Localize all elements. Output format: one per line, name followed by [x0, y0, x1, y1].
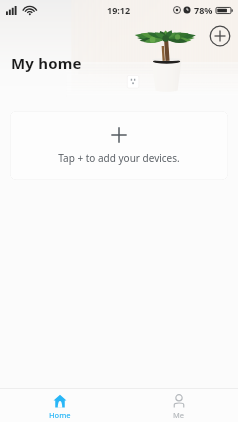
- staticText: 78%: [194, 4, 213, 16]
- button[interactable]: Add device: [208, 24, 232, 48]
- staticText: My home: [11, 53, 82, 73]
- button[interactable]: Home: [0, 389, 119, 420]
- button[interactable]: Tap + to add your devices.: [10, 111, 228, 180]
- staticText: Home: [49, 410, 71, 420]
- staticText: 19:12: [107, 4, 131, 16]
- staticText: Tap + to add your devices.: [58, 151, 180, 165]
- button[interactable]: Me: [119, 389, 238, 420]
- staticText: Me: [173, 410, 185, 420]
